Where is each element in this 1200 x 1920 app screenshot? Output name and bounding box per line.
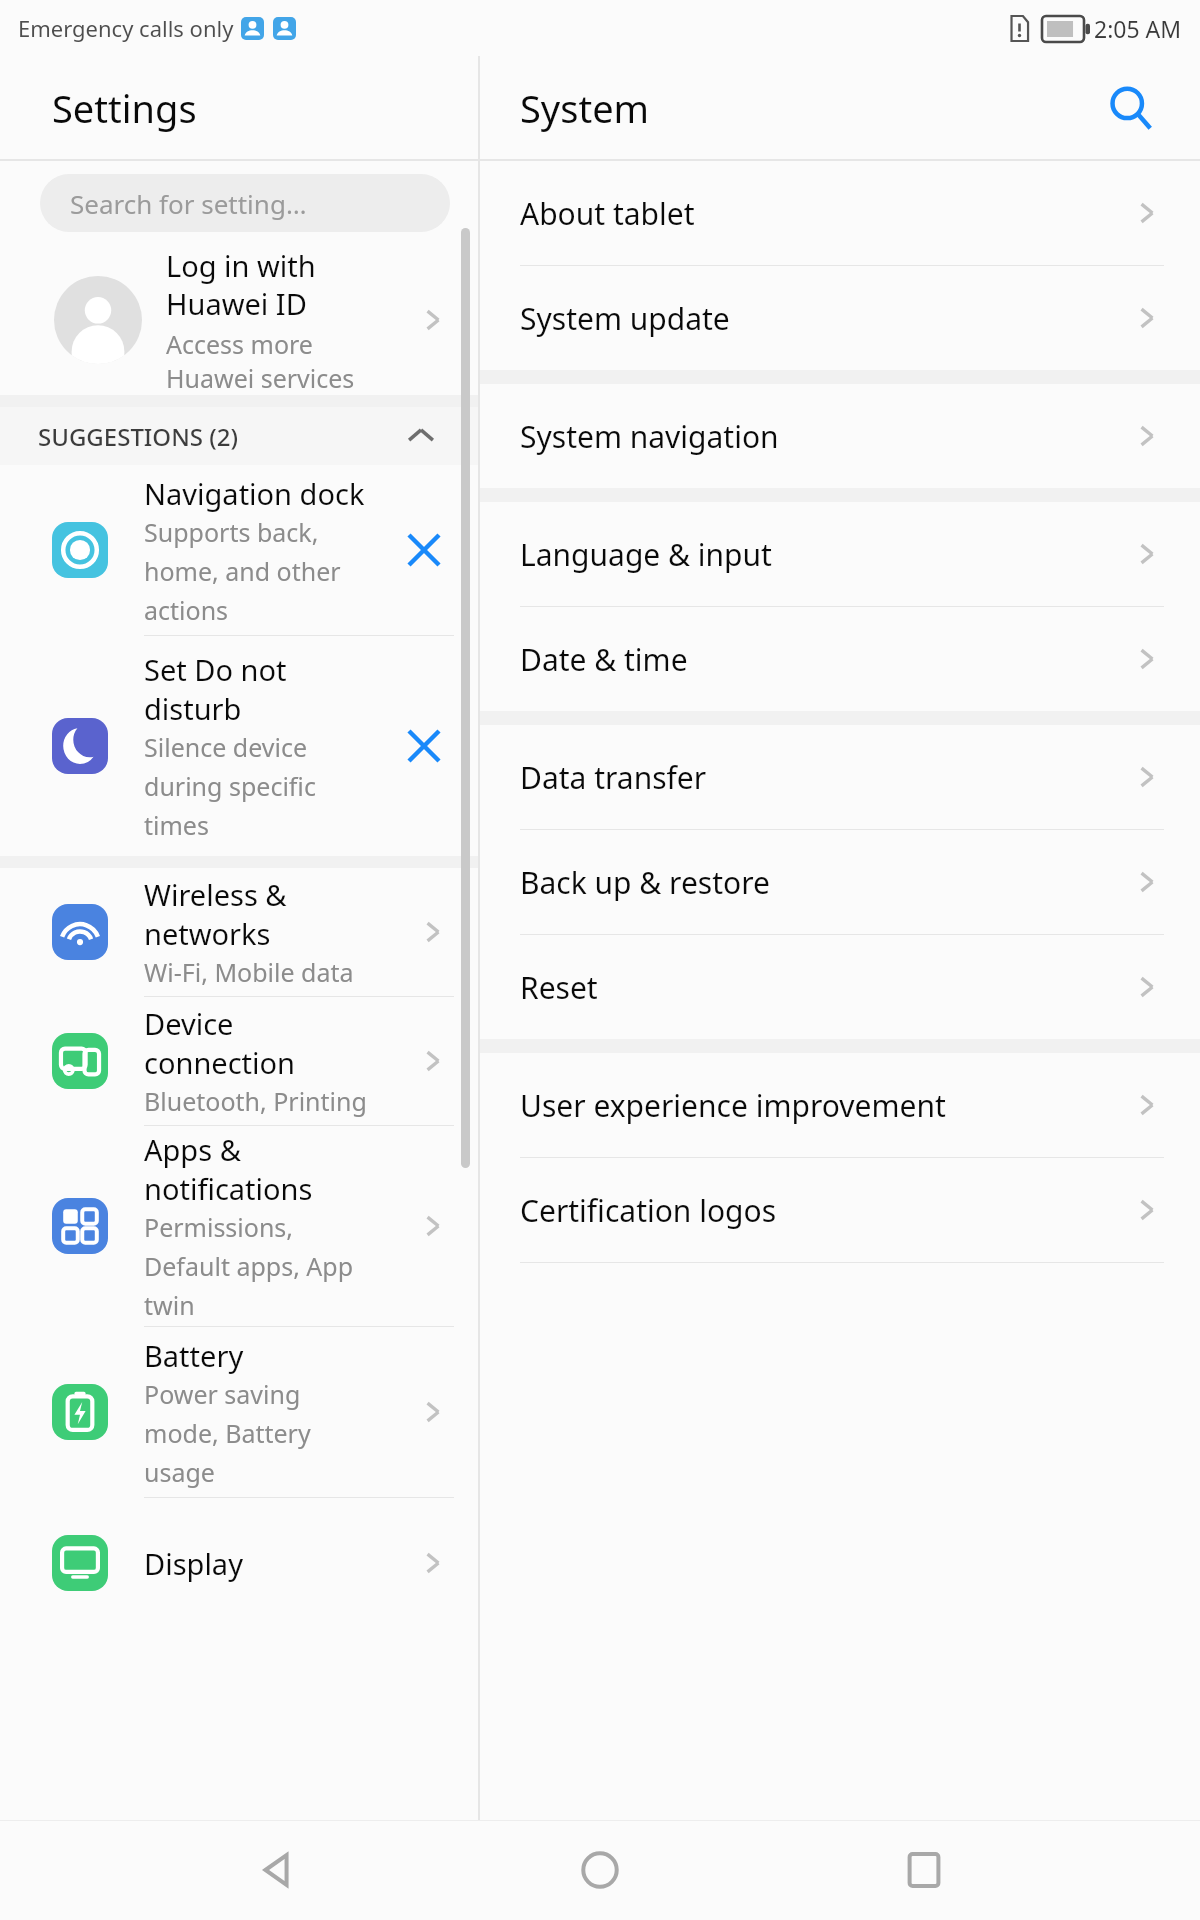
button[interactable]: Navigation dock	[0, 465, 478, 635]
button[interactable]: Recent apps	[876, 1822, 972, 1918]
staticText: Supports back, home, and other actions	[144, 515, 341, 627]
other: Collapse suggestions	[404, 419, 438, 453]
staticText: Date & time	[520, 639, 1130, 680]
button[interactable]: Battery	[0, 1327, 478, 1497]
staticText: System navigation	[520, 416, 1130, 457]
button[interactable]: User experience improvement	[480, 1053, 1200, 1157]
button[interactable]: Apps & notifications	[0, 1126, 478, 1326]
staticText: System	[520, 82, 650, 134]
staticText: Apps & notifications	[144, 1130, 313, 1208]
staticText: Emergency calls only	[18, 13, 234, 43]
button[interactable]: Display	[0, 1498, 478, 1628]
staticText: Battery	[144, 1336, 244, 1375]
staticText: Wireless & networks	[144, 875, 287, 953]
staticText: Display	[144, 1544, 243, 1583]
button[interactable]: Wireless & networks	[0, 868, 478, 996]
staticText: Permissions, Default apps, App twin	[144, 1210, 354, 1322]
button[interactable]: System navigation	[480, 384, 1200, 488]
staticText: Set Do not disturb	[144, 650, 287, 728]
button[interactable]: Dismiss suggestion	[398, 720, 450, 772]
button[interactable]: Search for setting…	[40, 174, 450, 232]
staticText: Settings	[52, 82, 197, 134]
button[interactable]: Dismiss suggestion	[398, 524, 450, 576]
staticText: Power saving mode, Battery usage	[144, 1377, 311, 1489]
button[interactable]: Log in with Huawei ID	[0, 245, 478, 395]
button[interactable]: Reset	[480, 935, 1200, 1039]
staticText: Search for setting…	[70, 186, 307, 221]
staticText: Device connection	[144, 1004, 296, 1082]
button[interactable]: Device connection	[0, 997, 478, 1125]
staticText: Certification logos	[520, 1190, 1130, 1231]
staticText: Access more Huawei services	[166, 327, 355, 395]
button[interactable]: System update	[480, 266, 1200, 370]
staticText: Back up & restore	[520, 862, 1130, 903]
button[interactable]: Data transfer	[480, 725, 1200, 829]
button[interactable]: Certification logos	[480, 1158, 1200, 1262]
staticText: Navigation dock	[144, 474, 365, 513]
staticText: System update	[520, 298, 1130, 339]
button[interactable]: Set Do not disturb	[0, 636, 478, 856]
staticText: About tablet	[520, 193, 1130, 234]
staticText: Reset	[520, 967, 1130, 1008]
staticText: Log in with Huawei ID	[166, 246, 316, 323]
button[interactable]: Search	[1100, 78, 1160, 138]
button[interactable]: Language & input	[480, 502, 1200, 606]
staticText: Data transfer	[520, 757, 1130, 798]
button[interactable]: Back	[228, 1822, 324, 1918]
staticText: 2:05 AM	[1094, 13, 1182, 44]
button[interactable]: Back up & restore	[480, 830, 1200, 934]
button[interactable]: Home	[552, 1822, 648, 1918]
button[interactable]: About tablet	[480, 161, 1200, 265]
staticText: User experience improvement	[520, 1085, 1130, 1126]
staticText: Language & input	[520, 534, 1130, 575]
staticText: SUGGESTIONS (2)	[38, 420, 238, 453]
button[interactable]: Date & time	[480, 607, 1200, 711]
staticText: Wi-Fi, Mobile data	[144, 955, 354, 989]
staticText: Silence device during specific times	[144, 730, 316, 842]
staticText: Bluetooth, Printing	[144, 1084, 367, 1118]
